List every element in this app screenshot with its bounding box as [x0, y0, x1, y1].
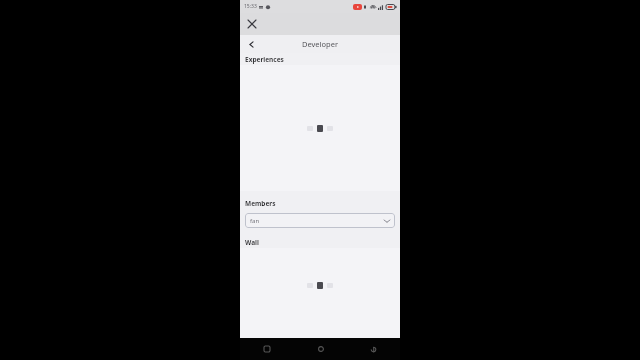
button[interactable]: Back — [347, 338, 400, 360]
button[interactable]: fan — [245, 213, 395, 228]
button[interactable]: Recents — [240, 338, 294, 360]
staticText: Experiences — [245, 55, 284, 64]
button[interactable]: Home — [294, 338, 347, 360]
button[interactable]: Close — [244, 16, 260, 32]
button[interactable]: Back — [243, 36, 259, 52]
staticText: Members — [245, 199, 276, 208]
staticText: Developer — [302, 39, 339, 49]
staticText: Wall — [245, 238, 259, 247]
staticText: fan — [250, 217, 260, 225]
staticText: 15:33 — [244, 3, 257, 10]
